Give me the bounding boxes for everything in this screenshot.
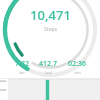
button[interactable]: Activity chart — [0, 78, 100, 100]
button[interactable]: 02:36 — [68, 59, 86, 75]
staticText: 10,471 — [30, 6, 71, 24]
staticText: km — [19, 70, 25, 75]
button[interactable]: 412.7 — [39, 59, 57, 75]
staticText: 7.82 — [15, 59, 29, 69]
button[interactable]: 10,471 — [30, 6, 71, 33]
staticText: min — [74, 70, 81, 75]
staticText: 412.7 — [39, 59, 57, 69]
staticText: kcal — [45, 70, 52, 75]
staticText: Steps — [44, 26, 57, 33]
button[interactable]: 7.82 — [15, 59, 29, 75]
staticText: 02:36 — [68, 59, 86, 69]
